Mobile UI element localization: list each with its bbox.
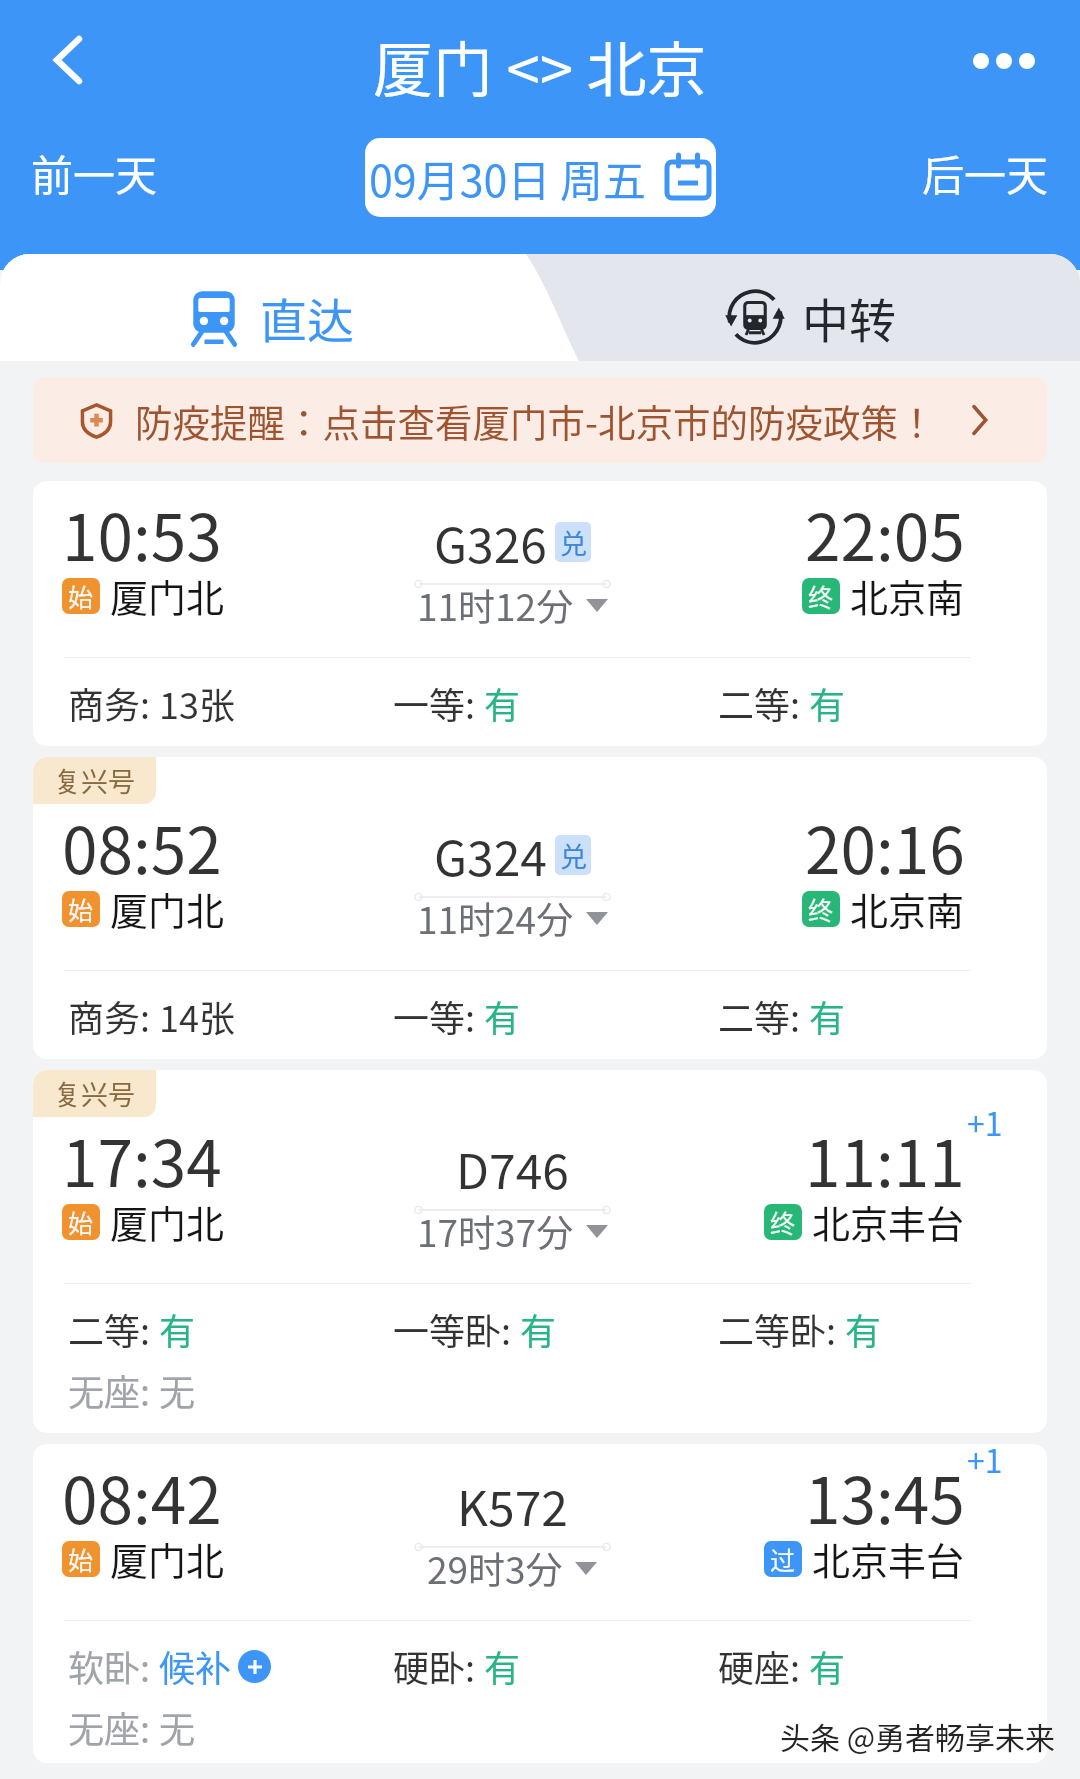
staticText: 兑: [560, 836, 587, 875]
staticText: 有: [520, 1303, 557, 1355]
button[interactable]: 返回: [24, 15, 114, 105]
staticText: K572: [457, 1470, 568, 1540]
staticText: 复兴号: [54, 1074, 135, 1113]
staticText: 厦门 <> 北京: [373, 22, 707, 109]
staticText: 防疫提醒：点击查看厦门市-北京市的防疫政策！: [135, 393, 936, 447]
staticText: 头条 @勇者畅享未来: [780, 1714, 1056, 1757]
staticText: +1: [967, 1099, 1003, 1145]
staticText: 硬座:: [718, 1640, 809, 1692]
button[interactable]: 后一天: [906, 130, 1065, 215]
staticText: 候补: [159, 1640, 232, 1692]
button[interactable]: 复兴号: [33, 1070, 1047, 1433]
staticText: 前一天: [31, 142, 158, 203]
staticText: 有: [809, 1640, 846, 1692]
button[interactable]: 直达: [0, 254, 540, 361]
staticText: 无: [159, 1701, 196, 1753]
staticText: 有: [159, 1303, 196, 1355]
staticText: 14张: [159, 990, 235, 1042]
staticText: 厦门北: [110, 1531, 225, 1586]
staticText: 11时24分: [417, 891, 574, 945]
staticText: 有: [809, 677, 846, 729]
staticText: 终: [808, 578, 834, 614]
staticText: 始: [68, 1541, 94, 1577]
button[interactable]: 防疫提醒：点击查看厦门市-北京市的防疫政策！: [33, 377, 1047, 463]
staticText: 22:05: [805, 487, 965, 580]
staticText: 终: [808, 891, 834, 927]
button[interactable]: 08:42: [33, 1444, 1047, 1763]
staticText: 商务:: [68, 990, 159, 1042]
staticText: 软卧:: [68, 1640, 159, 1692]
staticText: +1: [967, 1444, 1003, 1482]
staticText: 无座:: [68, 1364, 159, 1416]
staticText: 10:53: [62, 487, 222, 580]
staticText: 二等:: [718, 677, 809, 729]
staticText: 有: [845, 1303, 882, 1355]
staticText: 始: [68, 891, 94, 927]
staticText: 11时12分: [417, 578, 574, 632]
staticText: 二等:: [718, 990, 809, 1042]
staticText: 11:11: [805, 1113, 965, 1206]
staticText: 有: [484, 990, 521, 1042]
staticText: 09月30日 周五: [369, 147, 647, 209]
button[interactable]: 09月30日 周五: [365, 138, 716, 217]
button[interactable]: 中转: [540, 254, 1080, 361]
staticText: 中转: [802, 283, 896, 351]
staticText: 一等:: [393, 677, 484, 729]
staticText: 北京丰台: [812, 1194, 965, 1249]
staticText: 终: [770, 1204, 796, 1240]
staticText: 13:45: [805, 1450, 965, 1543]
button[interactable]: 更多: [973, 53, 1035, 69]
staticText: 后一天: [922, 142, 1049, 203]
staticText: 商务:: [68, 677, 159, 729]
staticText: 北京南: [850, 881, 965, 936]
staticText: 有: [484, 677, 521, 729]
button[interactable]: 前一天: [15, 130, 174, 215]
staticText: 二等:: [68, 1303, 159, 1355]
staticText: 北京丰台: [812, 1531, 965, 1586]
staticText: 过: [770, 1541, 796, 1577]
staticText: 有: [484, 1640, 521, 1692]
staticText: 一等:: [393, 990, 484, 1042]
staticText: 始: [68, 1204, 94, 1240]
staticText: 13张: [159, 677, 235, 729]
staticText: G326: [434, 507, 547, 577]
staticText: 无座:: [68, 1701, 159, 1753]
staticText: 厦门北: [110, 881, 225, 936]
staticText: 硬卧:: [393, 1640, 484, 1692]
staticText: 始: [68, 578, 94, 614]
staticText: 29时3分: [427, 1541, 563, 1595]
button[interactable]: 复兴号: [33, 757, 1047, 1059]
staticText: 二等卧:: [718, 1303, 845, 1355]
staticText: 一等卧:: [393, 1303, 520, 1355]
staticText: 17:34: [62, 1113, 222, 1206]
staticText: G324: [434, 820, 547, 890]
staticText: 08:52: [62, 800, 222, 893]
staticText: 兑: [560, 523, 587, 562]
staticText: 厦门北: [110, 568, 225, 623]
staticText: 无: [159, 1364, 196, 1416]
staticText: 北京南: [850, 568, 965, 623]
staticText: 20:16: [805, 800, 965, 893]
staticText: 复兴号: [54, 761, 135, 800]
staticText: 08:42: [62, 1450, 222, 1543]
staticText: 直达: [260, 283, 354, 351]
staticText: 17时37分: [417, 1204, 574, 1258]
staticText: 厦门北: [110, 1194, 225, 1249]
staticText: 有: [809, 990, 846, 1042]
button[interactable]: 10:53: [33, 481, 1047, 746]
staticText: D746: [456, 1133, 569, 1203]
